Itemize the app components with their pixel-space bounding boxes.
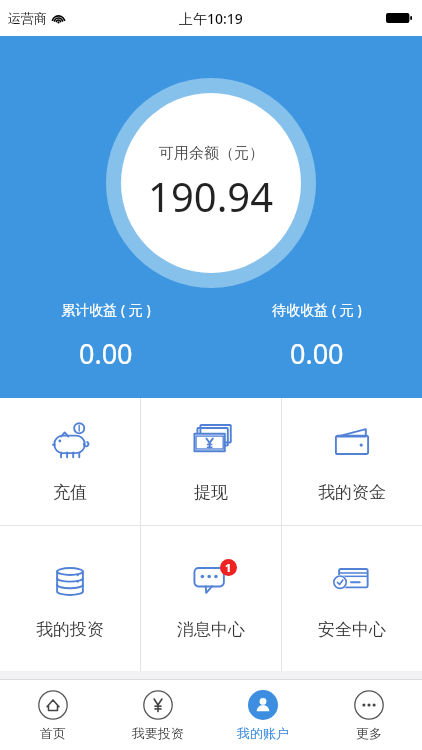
staticText: 1 bbox=[225, 560, 232, 575]
button[interactable]: 安全中心 bbox=[282, 526, 422, 671]
staticText: 190.94 bbox=[148, 169, 274, 223]
staticText: 运营商 bbox=[8, 10, 47, 26]
staticText: 我要投资 bbox=[132, 725, 184, 741]
button[interactable]: 首页 bbox=[0, 680, 105, 750]
staticText: 安全中心 bbox=[318, 619, 386, 640]
button[interactable]: 更多 bbox=[316, 680, 422, 750]
staticText: 消息中心 bbox=[177, 619, 245, 640]
button[interactable]: 我的资金 bbox=[282, 398, 422, 525]
staticText: 待收收益 ( 元 ) bbox=[272, 300, 362, 319]
button[interactable]: 1 bbox=[141, 526, 281, 671]
staticText: 提现 bbox=[194, 482, 228, 503]
button[interactable]: 我要投资 bbox=[105, 680, 210, 750]
staticText: 0.00 bbox=[79, 335, 133, 372]
staticText: 累计收益 ( 元 ) bbox=[61, 300, 151, 319]
staticText: 充值 bbox=[53, 482, 87, 503]
button[interactable]: 我的账户 bbox=[210, 680, 316, 750]
staticText: 0.00 bbox=[290, 335, 344, 372]
button[interactable]: 我的投资 bbox=[0, 526, 140, 671]
staticText: 首页 bbox=[40, 725, 66, 741]
staticText: 我的资金 bbox=[318, 482, 386, 503]
staticText: 上午10:19 bbox=[179, 9, 243, 28]
button[interactable]: 提现 bbox=[141, 398, 281, 525]
staticText: 我的账户 bbox=[237, 725, 289, 741]
staticText: 更多 bbox=[356, 725, 382, 741]
staticText: 我的投资 bbox=[36, 619, 104, 640]
button[interactable]: 充值 bbox=[0, 398, 140, 525]
staticText: 可用余额（元） bbox=[159, 144, 264, 163]
